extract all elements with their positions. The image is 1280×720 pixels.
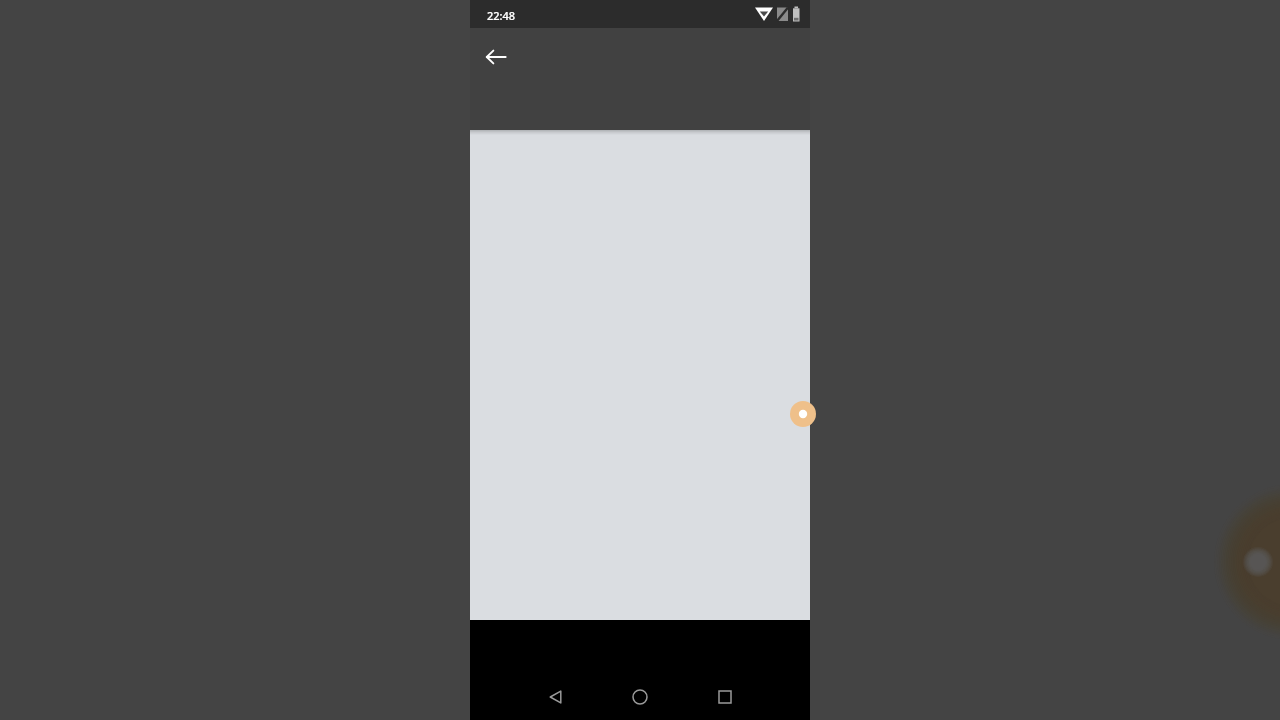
staticText: 22:48	[487, 8, 516, 23]
button[interactable]: Home	[616, 673, 664, 720]
button[interactable]: Back	[472, 33, 520, 81]
button[interactable]: Recent apps	[701, 673, 749, 720]
button[interactable]: Back	[532, 673, 580, 720]
